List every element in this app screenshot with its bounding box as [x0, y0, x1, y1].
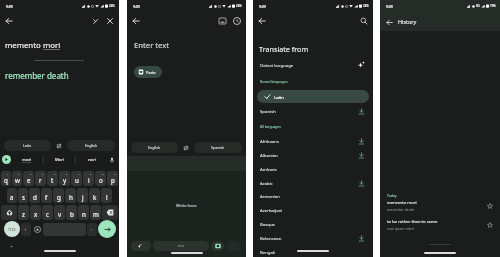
staticText: memento	[5, 40, 43, 51]
button[interactable]: e	[23, 171, 34, 186]
button[interactable]: u	[71, 171, 82, 186]
button[interactable]: .	[87, 223, 97, 236]
staticText: ?123	[8, 227, 16, 232]
button[interactable]: Camera	[211, 241, 224, 251]
button[interactable]: b	[66, 205, 77, 220]
button[interactable]: Back	[130, 15, 142, 27]
button[interactable]: Translate	[2, 155, 11, 164]
staticText: Today	[387, 193, 397, 198]
button[interactable]: English	[67, 140, 115, 151]
staticText: 9:09	[133, 4, 140, 9]
staticText: w	[15, 176, 20, 184]
button[interactable]: English	[131, 142, 178, 153]
staticText: Belarusian	[260, 235, 282, 241]
button[interactable]: Back	[383, 16, 395, 28]
button[interactable]: Swap languages	[51, 140, 67, 151]
button[interactable]: Shift	[1, 205, 17, 220]
staticText: 0	[114, 172, 116, 175]
button[interactable]: Voice input	[107, 155, 117, 165]
button[interactable]: Back	[256, 15, 268, 27]
button[interactable]: Arabic	[253, 176, 373, 190]
button[interactable]: History	[231, 15, 243, 27]
button[interactable]: Symbols	[4, 221, 20, 237]
button[interactable]: Spanish	[253, 104, 373, 118]
staticText: s	[22, 193, 25, 201]
button[interactable]: r	[35, 171, 46, 186]
button[interactable]: mori	[11, 153, 43, 166]
staticText: 7	[78, 172, 80, 175]
staticText: .	[91, 225, 93, 231]
staticText: Amharic	[260, 166, 277, 172]
button[interactable]: Mori	[44, 153, 75, 166]
button[interactable]: Search	[358, 15, 370, 27]
button[interactable]: k	[89, 188, 100, 203]
staticText: k	[93, 193, 97, 201]
button[interactable]: x	[30, 205, 41, 220]
button[interactable]: p	[107, 171, 118, 186]
button[interactable]: Afrikaans	[253, 134, 373, 148]
button[interactable]: Albanian	[253, 148, 373, 162]
button[interactable]: to be rather than to seem	[380, 217, 500, 232]
button[interactable]: Azerbaijani	[253, 203, 373, 217]
button[interactable]: Edit	[89, 15, 101, 27]
button[interactable]: d	[29, 188, 40, 203]
button[interactable]: Close	[104, 15, 116, 27]
button[interactable]: Basque	[253, 217, 373, 231]
button[interactable]: w	[12, 171, 22, 186]
button[interactable]: Backspace	[102, 205, 118, 220]
staticText: Latin	[274, 94, 284, 100]
button[interactable]: o	[95, 171, 106, 186]
staticText: 2	[18, 172, 20, 175]
button[interactable]: Favourite	[486, 221, 494, 229]
button[interactable]: f	[41, 188, 52, 203]
button[interactable]: Spanish	[194, 142, 242, 153]
button[interactable]: s	[18, 188, 28, 203]
button[interactable]: More	[227, 241, 241, 251]
button[interactable]: m	[90, 205, 101, 220]
button[interactable]: c	[42, 205, 53, 220]
button[interactable]: i	[83, 171, 94, 186]
staticText: Bengali	[260, 249, 276, 255]
button[interactable]: n	[78, 205, 89, 220]
button[interactable]: g	[53, 188, 64, 203]
staticText: ⋮	[232, 244, 236, 249]
button[interactable]: ,	[21, 223, 31, 236]
button[interactable]: h	[65, 188, 76, 203]
button[interactable]: q	[1, 171, 11, 186]
button[interactable]: v	[54, 205, 65, 220]
button[interactable]: Back	[3, 15, 15, 27]
button[interactable]: memento mori	[380, 198, 500, 213]
button[interactable]: Swap languages	[178, 142, 194, 153]
staticText: v	[58, 210, 62, 218]
button[interactable]: Latin	[4, 140, 51, 151]
button[interactable]: t	[47, 171, 58, 186]
staticText: 9:09	[259, 4, 266, 9]
button[interactable]: Armenian	[253, 189, 373, 203]
button[interactable]: a	[7, 188, 17, 203]
button[interactable]: j	[77, 188, 88, 203]
button[interactable]: Enter	[98, 220, 116, 238]
button[interactable]: Bengali	[253, 245, 373, 257]
button[interactable]: Latin	[257, 90, 369, 103]
button[interactable]: Detect language	[253, 58, 373, 71]
button[interactable]: Belarusian	[253, 231, 373, 245]
button[interactable]: y	[59, 171, 70, 186]
staticText: q	[4, 176, 8, 184]
button[interactable]: Keyboard	[216, 15, 228, 27]
button[interactable]: Favourite	[486, 202, 494, 210]
staticText: mori	[22, 157, 32, 163]
button[interactable]: nori	[76, 153, 107, 166]
button[interactable]: Suggestions	[153, 241, 209, 251]
button[interactable]: l	[101, 188, 112, 203]
button[interactable]: Emoji	[32, 223, 42, 236]
staticText: Afrikaans	[260, 138, 279, 144]
button[interactable]: Paste	[134, 66, 162, 78]
staticText: j	[82, 193, 84, 201]
staticText: 9	[102, 172, 104, 175]
staticText: Recent languages	[260, 79, 288, 83]
button[interactable]: Amharic	[253, 162, 373, 176]
button[interactable]: Undo	[131, 241, 151, 251]
button[interactable]: z	[18, 205, 29, 220]
staticText: l	[106, 193, 108, 201]
